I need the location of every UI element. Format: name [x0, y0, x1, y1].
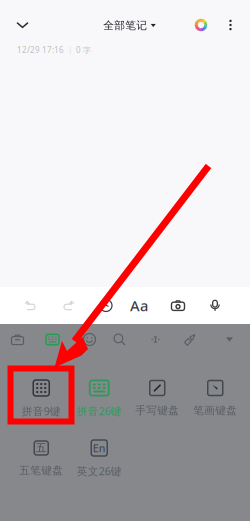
button[interactable]: 五 — [12, 438, 70, 493]
button[interactable]: 笔画键盘 — [186, 378, 244, 433]
button[interactable]: Undo — [17, 291, 45, 319]
button[interactable]: Move cursor — [144, 326, 167, 352]
staticText: 拼音9键 — [22, 404, 61, 418]
button[interactable]: Emoji — [78, 326, 101, 352]
staticText: 英文26键 — [77, 464, 122, 478]
button[interactable]: Search — [108, 326, 131, 352]
staticText: En — [93, 441, 106, 455]
staticText: 笔画键盘 — [193, 404, 237, 417]
staticText: 全部笔记 — [103, 19, 147, 32]
button[interactable]: Collapse — [6, 10, 38, 40]
button[interactable]: Camera — [164, 291, 192, 319]
button[interactable]: Keyboard — [41, 326, 64, 352]
button[interactable]: 拼音26键 — [70, 378, 128, 433]
button[interactable]: En — [70, 438, 128, 493]
staticText: 0 字 — [76, 45, 91, 55]
button[interactable]: Hide keyboard — [218, 326, 241, 352]
staticText: Aa — [130, 296, 148, 315]
staticText: 手写键盘 — [135, 404, 179, 417]
button[interactable]: Clipboard — [6, 326, 29, 352]
staticText: | — [68, 45, 72, 55]
staticText: 拼音26键 — [77, 404, 122, 418]
button[interactable]: 全部笔记 — [99, 13, 160, 37]
button[interactable]: More options — [219, 11, 241, 39]
button[interactable]: History — [92, 291, 120, 319]
button[interactable]: Redo — [54, 291, 82, 319]
button[interactable]: Theme — [188, 11, 214, 39]
button[interactable]: Theme — [178, 326, 201, 352]
button[interactable]: 拼音9键 — [12, 378, 70, 433]
staticText: 五 — [36, 441, 47, 454]
button[interactable]: 手写键盘 — [128, 378, 186, 433]
staticText: 五笔键盘 — [19, 464, 63, 477]
button[interactable]: Voice input — [201, 291, 229, 319]
button[interactable]: Aa — [125, 291, 153, 319]
staticText: 12/29 17:16 — [17, 45, 64, 55]
